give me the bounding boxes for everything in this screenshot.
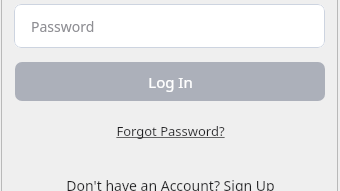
staticText: Log In [148, 72, 193, 92]
staticText: Forgot Password? [116, 122, 225, 140]
button[interactable]: Don't have an Account? Sign Up [50, 176, 290, 191]
staticText: Password [31, 17, 95, 36]
staticText: Don't have an Account? Sign Up [66, 176, 275, 191]
button[interactable]: Log In [15, 62, 325, 101]
button[interactable]: Password [14, 4, 325, 48]
button[interactable]: Forgot Password? [110, 121, 230, 141]
